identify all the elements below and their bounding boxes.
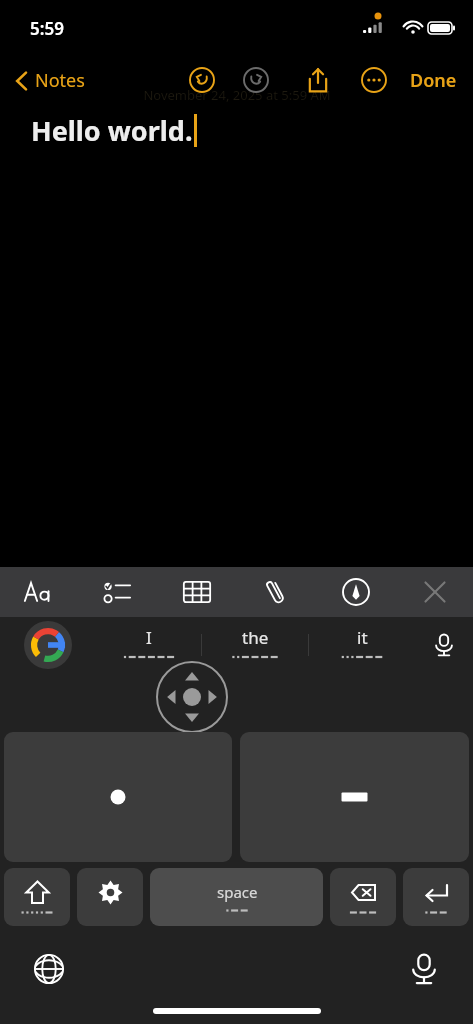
button[interactable]: Backspace	[330, 868, 396, 926]
staticText: I	[146, 626, 152, 649]
button[interactable]: Attach	[248, 567, 304, 617]
button[interactable]: it	[309, 617, 415, 673]
button[interactable]: Dot	[4, 732, 232, 862]
button[interactable]: Share	[298, 60, 338, 100]
button[interactable]: Undo	[182, 60, 222, 100]
button[interactable]: Shift	[4, 868, 70, 926]
button[interactable]: Done	[406, 62, 461, 99]
button[interactable]: Table	[169, 567, 225, 617]
staticText: Done	[410, 68, 457, 93]
button[interactable]: More	[354, 60, 394, 100]
staticText: space	[217, 882, 258, 902]
button[interactable]: Voice typing	[397, 942, 451, 996]
button[interactable]: Settings	[77, 868, 143, 926]
button[interactable]: Enter	[403, 868, 469, 926]
button[interactable]: Google	[0, 617, 96, 673]
staticText: the	[242, 626, 269, 649]
button[interactable]: the	[202, 617, 308, 673]
button[interactable]: Close	[407, 567, 463, 617]
button[interactable]: Cursor control	[156, 661, 228, 733]
button[interactable]: Format	[10, 567, 66, 617]
button[interactable]: Notes	[10, 68, 89, 93]
button[interactable]: space	[150, 868, 323, 926]
button[interactable]: Redo	[236, 60, 276, 100]
button[interactable]: Voice input	[415, 617, 473, 673]
staticText: Hello world.	[31, 112, 193, 149]
button[interactable]: Switch language	[22, 942, 76, 996]
button[interactable]: Markup	[328, 567, 384, 617]
staticText: it	[357, 626, 368, 649]
button[interactable]: Dash	[240, 732, 469, 862]
staticText: November 24, 2025 at 5:59 AM	[143, 86, 331, 104]
staticText: Notes	[35, 68, 85, 93]
staticText: 5:59	[30, 17, 64, 40]
button[interactable]: Checklist	[89, 567, 145, 617]
button[interactable]: I	[96, 617, 201, 673]
